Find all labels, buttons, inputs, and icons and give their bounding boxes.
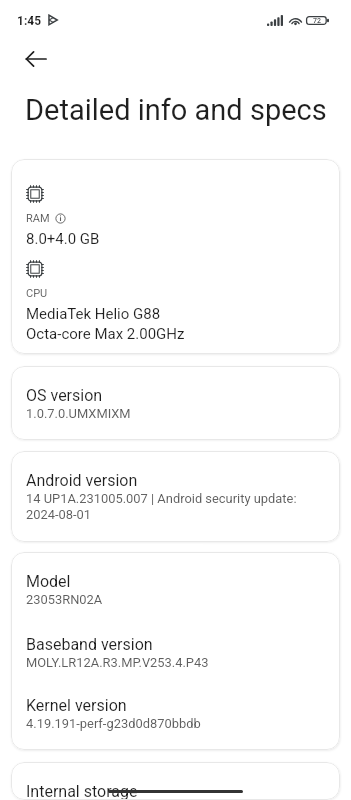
staticText: 1.0.7.0.UMXMIXM bbox=[26, 405, 131, 421]
staticText: Model bbox=[26, 572, 71, 591]
button[interactable]: RAM bbox=[11, 185, 340, 248]
staticText: Detailed info and specs bbox=[25, 93, 327, 127]
staticText: CPU bbox=[26, 286, 48, 300]
staticText: MOLY.LR12A.R3.MP.V253.4.P43 bbox=[26, 654, 209, 670]
staticText: 1:45 bbox=[17, 14, 42, 28]
button[interactable]: Kernel version bbox=[11, 696, 340, 731]
staticText: MediaTek Helio G88 Octa-core Max 2.00GHz bbox=[26, 303, 185, 343]
button[interactable]: OS version bbox=[11, 386, 340, 421]
staticText: Baseband version bbox=[26, 635, 153, 654]
staticText: 4.19.191-perf-g23d0d870bbdb bbox=[26, 715, 201, 731]
button[interactable]: Internal storage bbox=[11, 782, 340, 800]
staticText: Android version bbox=[26, 471, 138, 490]
staticText: 8.0+4.0 GB bbox=[26, 228, 100, 248]
button[interactable]: CPU bbox=[11, 260, 340, 343]
staticText: 72 bbox=[313, 17, 321, 25]
staticText: Kernel version bbox=[26, 696, 127, 715]
button[interactable]: Baseband version bbox=[11, 635, 340, 670]
staticText: RAM bbox=[26, 211, 50, 225]
staticText: Internal storage bbox=[26, 782, 138, 800]
button[interactable]: Model bbox=[11, 572, 340, 607]
button[interactable]: Android version bbox=[11, 471, 340, 522]
staticText: 14 UP1A.231005.007 | Android security up… bbox=[26, 490, 297, 522]
button[interactable]: Back bbox=[18, 41, 54, 77]
staticText: OS version bbox=[26, 386, 103, 405]
staticText: 23053RN02A bbox=[26, 591, 103, 607]
